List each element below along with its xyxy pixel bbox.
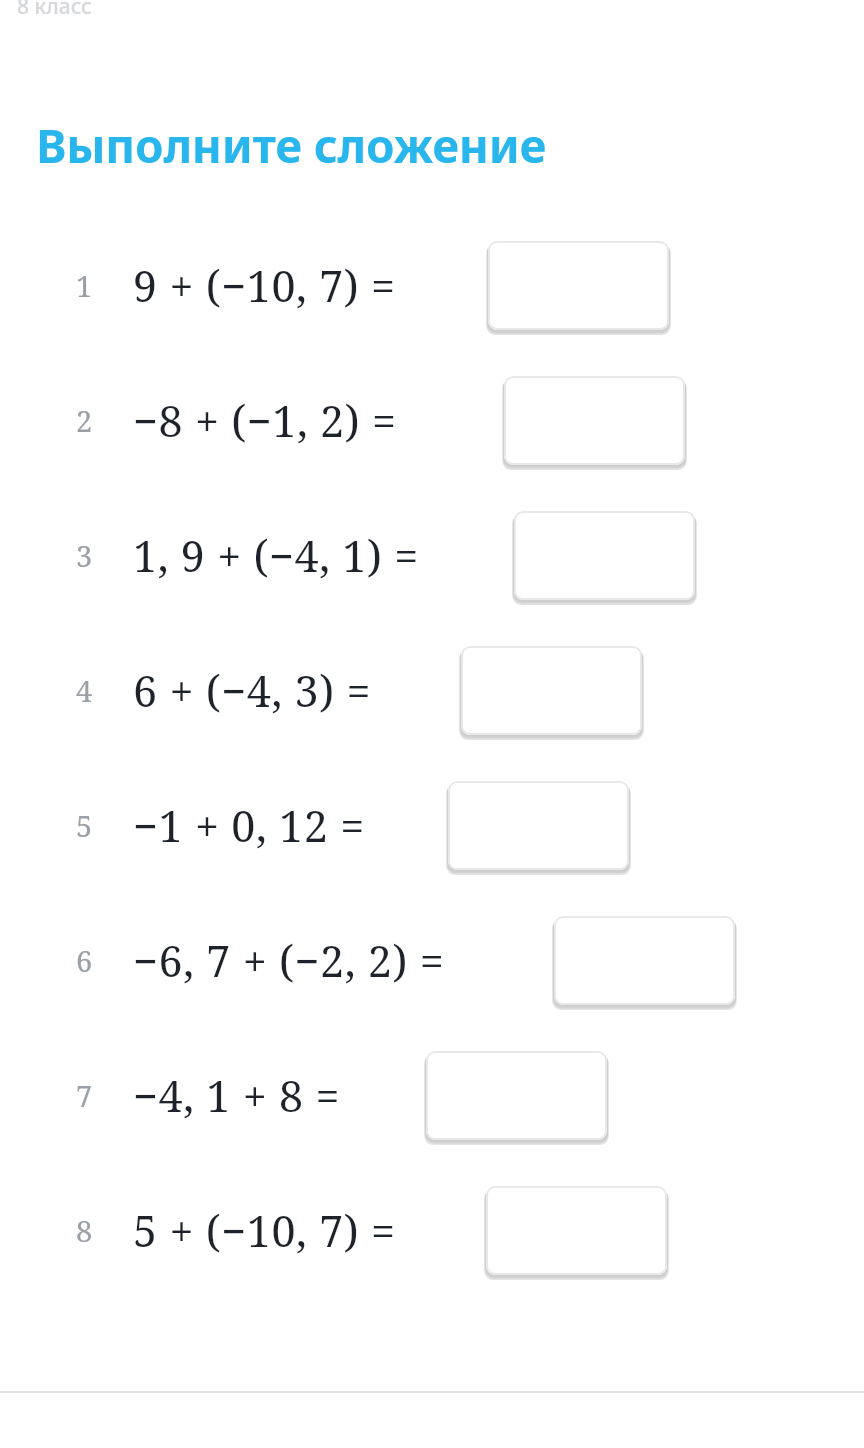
- button[interactable]: Answer field 4: [461, 646, 650, 743]
- button[interactable]: Answer field 7: [426, 1051, 615, 1148]
- button[interactable]: Header: [17, 0, 92, 21]
- staticText: −8 + (−1, 2) =: [133, 391, 397, 450]
- staticText: 1, 9 + (−4, 1) =: [133, 526, 419, 585]
- button[interactable]: Answer field 5: [448, 781, 637, 878]
- button[interactable]: Answer field 2: [504, 376, 693, 473]
- staticText: −1 + 0, 12 =: [133, 796, 365, 855]
- staticText: 8 класс: [17, 0, 92, 21]
- button[interactable]: Answer field 6: [554, 916, 743, 1013]
- staticText: 5: [76, 806, 93, 845]
- staticText: 5 + (−10, 7) =: [133, 1201, 396, 1260]
- staticText: 6 + (−4, 3) =: [133, 661, 372, 720]
- staticText: 2: [76, 401, 93, 440]
- staticText: 3: [76, 536, 93, 575]
- button[interactable]: Answer field 3: [514, 511, 703, 608]
- staticText: 1: [76, 266, 93, 305]
- staticText: 6: [76, 941, 93, 980]
- staticText: 9 + (−10, 7) =: [133, 256, 396, 315]
- staticText: −4, 1 + 8 =: [133, 1066, 341, 1125]
- button[interactable]: Answer field 1: [488, 241, 677, 338]
- staticText: −6, 7 + (−2, 2) =: [133, 931, 445, 990]
- button[interactable]: Answer field 8: [486, 1186, 675, 1283]
- staticText: 4: [76, 671, 93, 710]
- staticText: 8: [76, 1211, 93, 1250]
- button[interactable]: Выполните сложение: [36, 114, 547, 177]
- staticText: 7: [76, 1076, 93, 1115]
- staticText: Выполните сложение: [36, 114, 547, 177]
